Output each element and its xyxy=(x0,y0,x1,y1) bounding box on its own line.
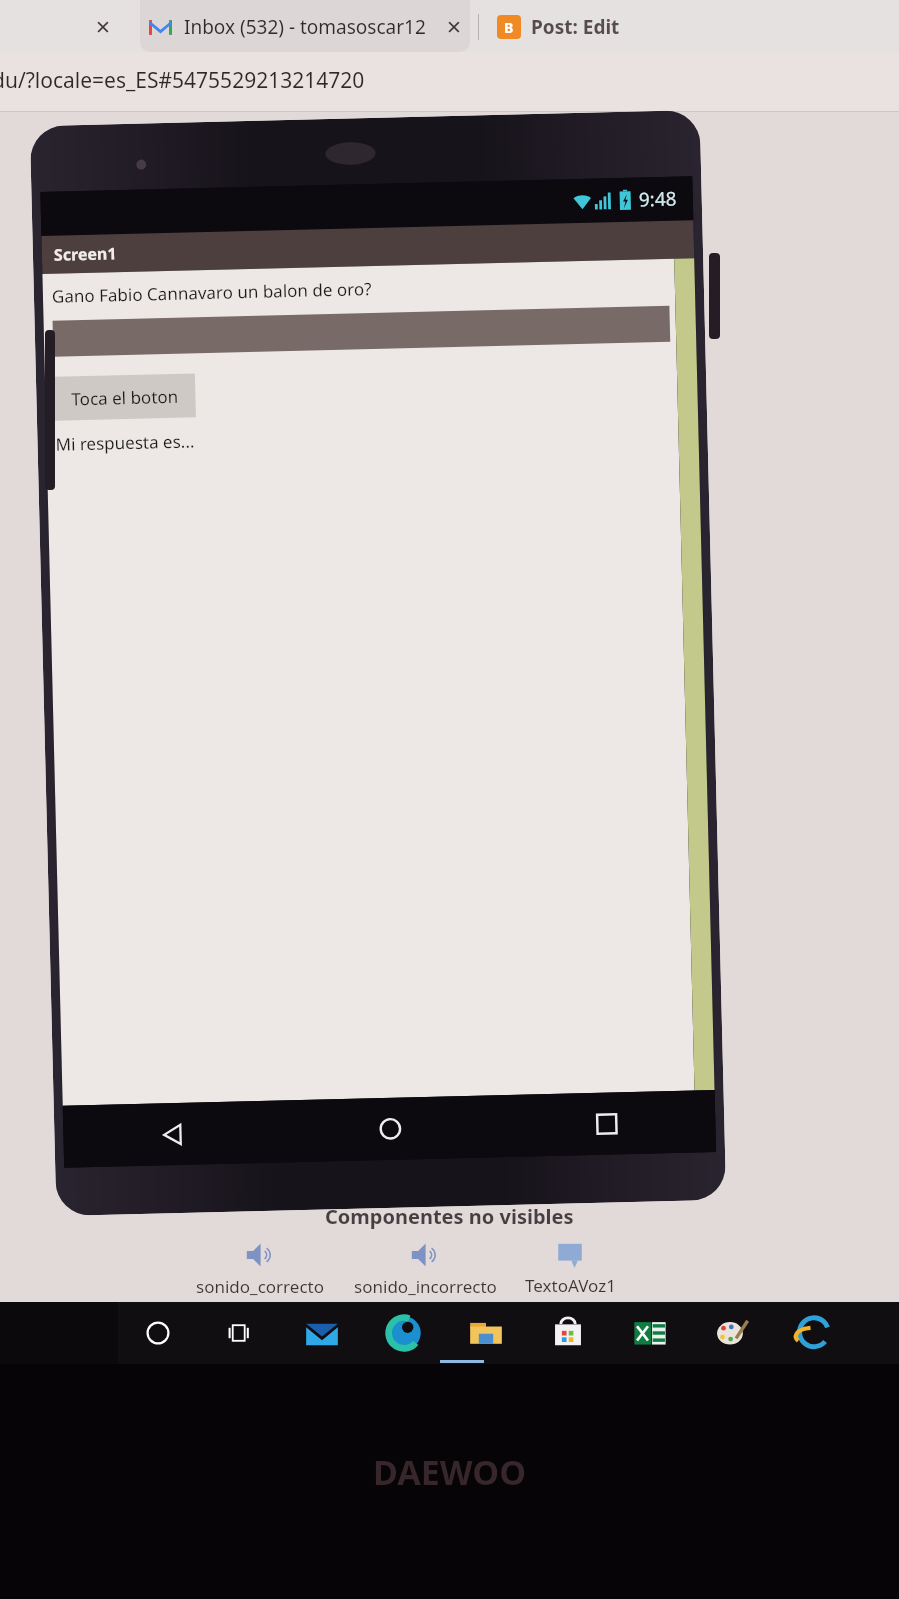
button[interactable]: Excel xyxy=(630,1313,670,1353)
button[interactable]: Task View xyxy=(220,1313,260,1353)
staticText: ✕ xyxy=(95,16,111,38)
button[interactable]: File Explorer xyxy=(466,1313,506,1353)
staticText: ✕ xyxy=(446,16,462,38)
staticText: B xyxy=(504,18,514,37)
staticText: sonido_incorrecto xyxy=(354,1275,497,1298)
staticText: Gano Fabio Cannavaro un balon de oro? xyxy=(52,277,372,308)
button[interactable]: Mail xyxy=(302,1313,342,1353)
staticText: du/?locale=es_ES#5475529213214720 xyxy=(0,66,365,95)
button[interactable]: Internet Explorer xyxy=(794,1313,834,1353)
button[interactable]: Toca el boton xyxy=(54,373,196,421)
button[interactable]: sonido_correcto xyxy=(180,1240,340,1298)
staticText: Inbox (532) - tomasoscar12 xyxy=(184,14,426,40)
staticText: 9:48 xyxy=(638,186,677,212)
staticText: DAEWOO xyxy=(373,1449,527,1495)
button[interactable]: Paint xyxy=(712,1313,752,1353)
staticText: Componentes no visibles xyxy=(325,1203,574,1230)
staticText: Toca el boton xyxy=(71,385,179,410)
button[interactable]: Microsoft Edge xyxy=(384,1313,424,1353)
button[interactable]: Home xyxy=(281,1095,499,1162)
button[interactable]: sonido_incorrecto xyxy=(340,1240,510,1298)
staticText: TextoAVoz1 xyxy=(525,1274,616,1297)
button[interactable]: Back xyxy=(63,1100,282,1168)
button[interactable]: Campo de respuesta xyxy=(52,306,670,357)
button[interactable]: TextoAVoz1 xyxy=(510,1241,630,1297)
staticText: Post: Edit xyxy=(531,14,620,40)
button[interactable]: Recents xyxy=(498,1090,716,1157)
button[interactable] xyxy=(140,0,470,52)
button[interactable]: Microsoft Store xyxy=(548,1313,588,1353)
button[interactable]: Cortana xyxy=(138,1313,178,1353)
staticText: Screen1 xyxy=(54,242,117,266)
staticText: Mi respuesta es... xyxy=(55,429,195,456)
staticText: sonido_correcto xyxy=(196,1275,324,1298)
